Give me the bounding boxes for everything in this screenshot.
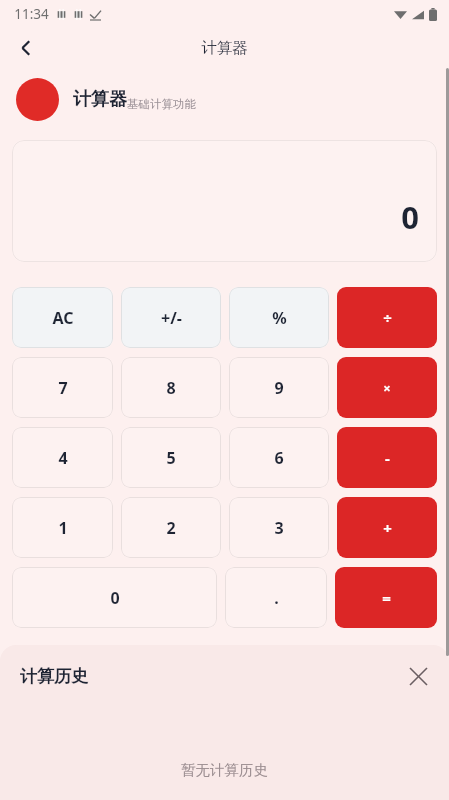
button[interactable]: . xyxy=(225,567,327,628)
staticText: 暂无计算历史 xyxy=(181,761,268,779)
button[interactable]: ÷ xyxy=(337,287,437,348)
staticText: +/- xyxy=(161,307,182,329)
staticText: 4 xyxy=(58,447,68,469)
button[interactable]: - xyxy=(337,427,437,488)
staticText: 基础计算功能 xyxy=(127,97,196,111)
button[interactable]: 2 xyxy=(121,497,221,558)
staticText: 2 xyxy=(166,517,176,539)
button[interactable]: 6 xyxy=(229,427,329,488)
staticText: × xyxy=(383,379,391,397)
button[interactable]: Back xyxy=(6,28,46,68)
staticText: 0 xyxy=(110,587,120,609)
staticText: 9 xyxy=(274,377,284,399)
staticText: 8 xyxy=(166,377,176,399)
button[interactable]: 3 xyxy=(229,497,329,558)
staticText: - xyxy=(385,448,390,468)
staticText: 11:34 xyxy=(14,5,49,23)
staticText: 0 xyxy=(401,196,419,238)
button[interactable]: 8 xyxy=(121,357,221,418)
staticText: + xyxy=(383,518,392,538)
staticText: = xyxy=(382,588,391,608)
button[interactable]: = xyxy=(335,567,437,628)
staticText: 7 xyxy=(58,377,68,399)
staticText: % xyxy=(272,307,287,329)
button[interactable]: 4 xyxy=(12,427,113,488)
button[interactable]: +/- xyxy=(121,287,221,348)
button[interactable]: AC xyxy=(12,287,113,348)
button[interactable]: % xyxy=(229,287,329,348)
staticText: 计算器 xyxy=(201,38,248,58)
button[interactable]: 7 xyxy=(12,357,113,418)
staticText: 计算器 xyxy=(73,88,127,111)
button[interactable]: 5 xyxy=(121,427,221,488)
button[interactable]: × xyxy=(337,357,437,418)
button[interactable]: 9 xyxy=(229,357,329,418)
button[interactable]: + xyxy=(337,497,437,558)
staticText: 1 xyxy=(58,517,68,539)
button[interactable]: 0 xyxy=(12,567,217,628)
button[interactable]: 1 xyxy=(12,497,113,558)
staticText: . xyxy=(274,587,279,609)
staticText: 3 xyxy=(274,517,284,539)
staticText: ÷ xyxy=(383,308,392,328)
staticText: AC xyxy=(52,307,74,329)
staticText: 6 xyxy=(274,447,284,469)
staticText: 计算历史 xyxy=(20,666,88,687)
staticText: 5 xyxy=(166,447,176,469)
button[interactable]: Close history xyxy=(397,655,439,697)
